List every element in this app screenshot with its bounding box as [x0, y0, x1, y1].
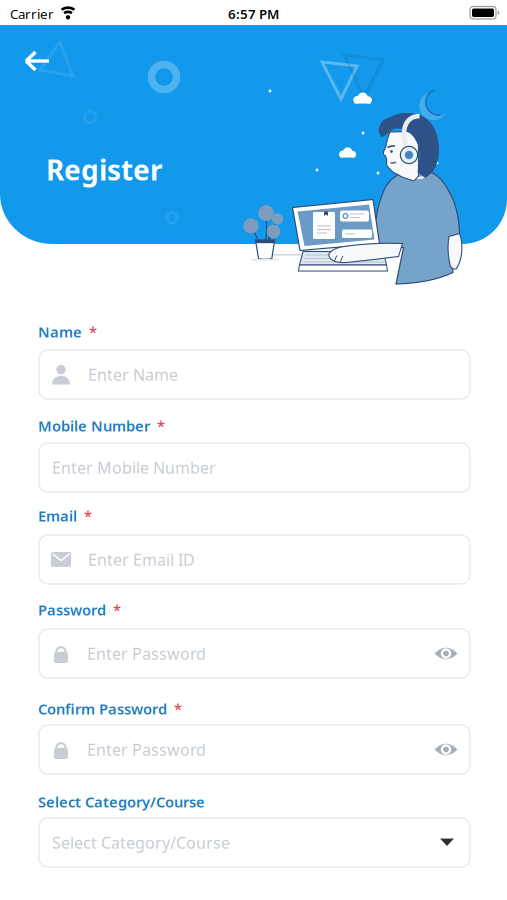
staticText: Select Category/Course — [38, 792, 205, 811]
staticText: Mobile Number — [38, 416, 150, 435]
staticText: Enter Mobile Number — [52, 457, 216, 478]
staticText: * — [157, 416, 165, 435]
staticText: Confirm Password — [38, 699, 167, 718]
button[interactable]: Enter Password — [39, 725, 470, 774]
button[interactable]: Back — [15, 50, 59, 72]
staticText: * — [174, 699, 182, 718]
staticText: Name — [38, 322, 82, 341]
staticText: * — [89, 322, 97, 341]
staticText: Register — [46, 151, 163, 188]
staticText: Enter Name — [88, 364, 178, 385]
staticText: 6:57 PM — [228, 5, 279, 23]
staticText: * — [84, 506, 92, 525]
staticText: Select Category/Course — [52, 832, 230, 853]
button[interactable]: Enter Password — [39, 629, 470, 678]
button[interactable]: Show password — [434, 741, 470, 757]
staticText: Enter Password — [87, 739, 206, 760]
staticText: Enter Password — [87, 643, 206, 664]
staticText: * — [113, 600, 121, 619]
button[interactable]: Show password — [434, 645, 470, 661]
staticText: Email — [38, 506, 77, 525]
staticText: Carrier — [10, 5, 54, 23]
staticText: Password — [38, 600, 106, 619]
button[interactable]: Enter Name — [39, 350, 470, 399]
button[interactable]: Select Category/Course — [39, 818, 470, 867]
button[interactable]: Enter Email ID — [39, 535, 470, 584]
staticText: Enter Email ID — [88, 549, 195, 570]
button[interactable]: Enter Mobile Number — [39, 443, 470, 492]
